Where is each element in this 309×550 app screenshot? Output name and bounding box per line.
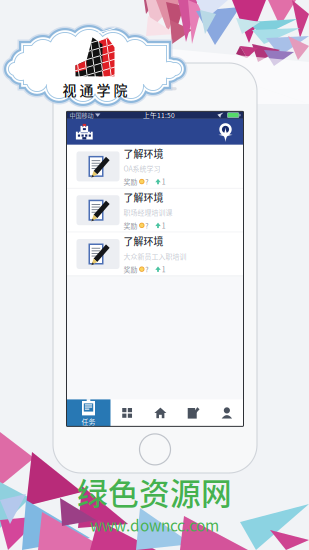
button[interactable]: 应用 — [110, 399, 144, 426]
button[interactable]: 任务 — [66, 399, 110, 426]
staticText: 1 — [162, 220, 166, 230]
staticText: www.downcc.com — [90, 514, 219, 536]
staticText: ? — [145, 220, 148, 230]
staticText: 奖励 — [123, 264, 137, 274]
button[interactable]: 学院 — [69, 119, 99, 145]
staticText: 视 通 学 院 — [62, 79, 127, 100]
button[interactable]: 了解环境 — [66, 189, 243, 232]
staticText: 奖励 — [123, 176, 137, 186]
staticText: 了解环境 — [123, 234, 163, 248]
button[interactable]: 了解环境 — [66, 145, 243, 188]
staticText: 1 — [162, 264, 166, 274]
staticText: 任务 — [81, 417, 95, 427]
staticText: 了解环境 — [123, 190, 163, 204]
staticText: OA系统学习 — [123, 163, 160, 173]
staticText: 中国移动 — [69, 111, 93, 120]
staticText: 1 — [162, 176, 166, 186]
button[interactable]: 我的 — [210, 399, 243, 426]
button[interactable]: 搜索 — [210, 119, 240, 145]
button[interactable]: 了解环境 — [66, 232, 243, 275]
staticText: 绿色资源网 — [77, 469, 232, 514]
staticText: ? — [145, 264, 148, 274]
staticText: 奖励 — [123, 220, 137, 230]
staticText: 大众新员工入职培训 — [123, 251, 186, 261]
staticText: 上午11:50 — [143, 110, 175, 120]
button[interactable]: 笔记 — [177, 399, 210, 426]
staticText: 职场经理培训课 — [123, 207, 172, 217]
button[interactable]: 首页 — [144, 399, 177, 426]
staticText: ? — [145, 176, 148, 186]
staticText: 了解环境 — [123, 146, 163, 160]
